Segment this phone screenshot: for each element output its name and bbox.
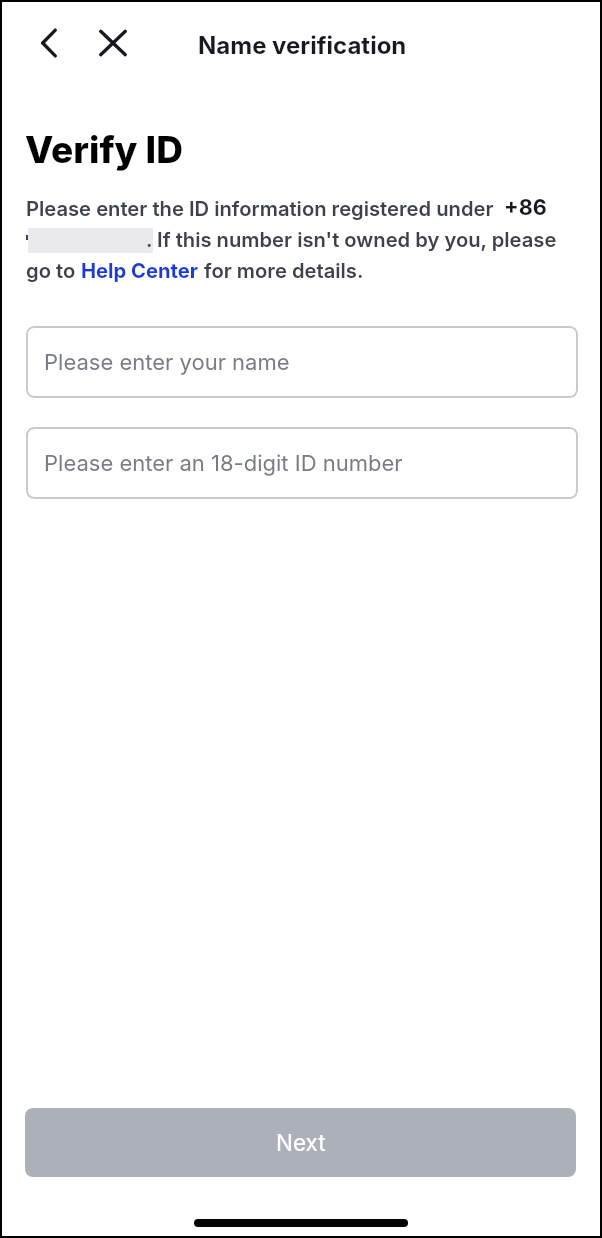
staticText: +86 — [504, 194, 547, 220]
staticText: Name verification — [198, 31, 407, 60]
staticText: Please enter an 18-digit ID number — [44, 450, 403, 477]
staticText: Verify ID — [25, 127, 183, 172]
staticText: Next — [276, 1129, 326, 1156]
button[interactable]: Close — [87, 17, 139, 69]
button[interactable]: Next — [25, 1108, 576, 1177]
staticText: go to — [26, 258, 81, 282]
button[interactable]: Please enter your name — [26, 326, 578, 398]
button[interactable]: Help Center — [81, 258, 199, 282]
staticText: . If this number isn't owned by you, ple… — [146, 227, 557, 251]
button[interactable]: Please enter an 18-digit ID number — [26, 427, 578, 499]
staticText: Please enter your name — [44, 349, 290, 376]
staticText: for more details. — [199, 258, 364, 282]
button[interactable]: Back — [23, 17, 75, 69]
staticText: Please enter the ID information register… — [26, 196, 494, 220]
